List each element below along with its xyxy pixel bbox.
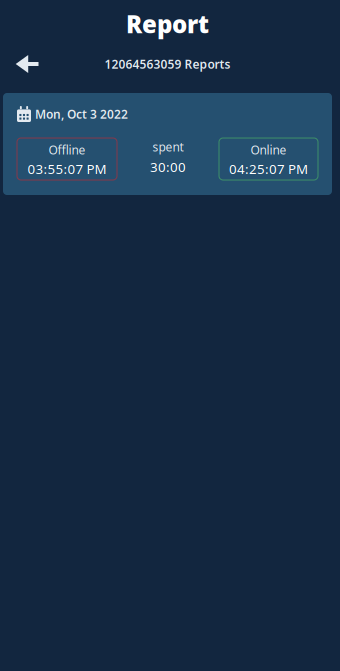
staticText: spent — [152, 139, 183, 155]
staticText: 04:25:07 PM — [229, 160, 308, 178]
button[interactable]: Offline — [17, 138, 117, 180]
staticText: 12064563059 Reports — [104, 56, 230, 72]
staticText: Online — [250, 142, 286, 158]
staticText: Mon, Oct 3 2022 — [35, 106, 128, 122]
staticText: Report — [126, 8, 209, 40]
button[interactable]: Back — [0, 48, 54, 80]
staticText: 03:55:07 PM — [27, 160, 106, 178]
staticText: Offline — [48, 142, 85, 158]
staticText: 30:00 — [150, 158, 186, 176]
button[interactable]: Online — [219, 138, 318, 180]
